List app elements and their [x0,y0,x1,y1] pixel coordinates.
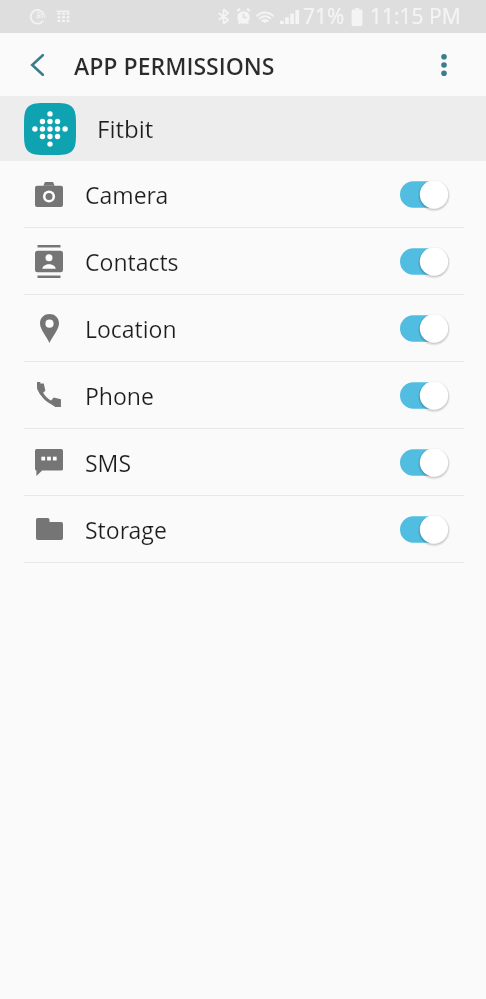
button[interactable]: Fitbit [0,96,486,161]
staticText: Fitbit [97,112,154,145]
staticText: 71% [303,2,345,31]
button[interactable]: Toggle [400,314,448,343]
staticText: Phone [85,380,154,411]
button[interactable]: SMS [0,429,486,495]
button[interactable]: Toggle [400,381,448,410]
button[interactable]: Toggle [400,448,448,477]
staticText: 11:15 PM [370,2,461,31]
button[interactable]: Contacts [0,228,486,294]
button[interactable]: Toggle [400,247,448,276]
staticText: Storage [85,514,167,545]
button[interactable]: Back [15,43,59,87]
button[interactable]: Phone [0,362,486,428]
button[interactable]: Storage [0,496,486,562]
button[interactable]: More options [422,43,466,87]
button[interactable]: Toggle [400,180,448,209]
staticText: Camera [85,179,169,210]
staticText: SMS [85,447,132,478]
button[interactable]: Camera [0,161,486,227]
staticText: Location [85,313,177,344]
button[interactable]: Location [0,295,486,361]
staticText: APP PERMISSIONS [74,50,275,81]
button[interactable]: Toggle [400,515,448,544]
staticText: Contacts [85,246,179,277]
